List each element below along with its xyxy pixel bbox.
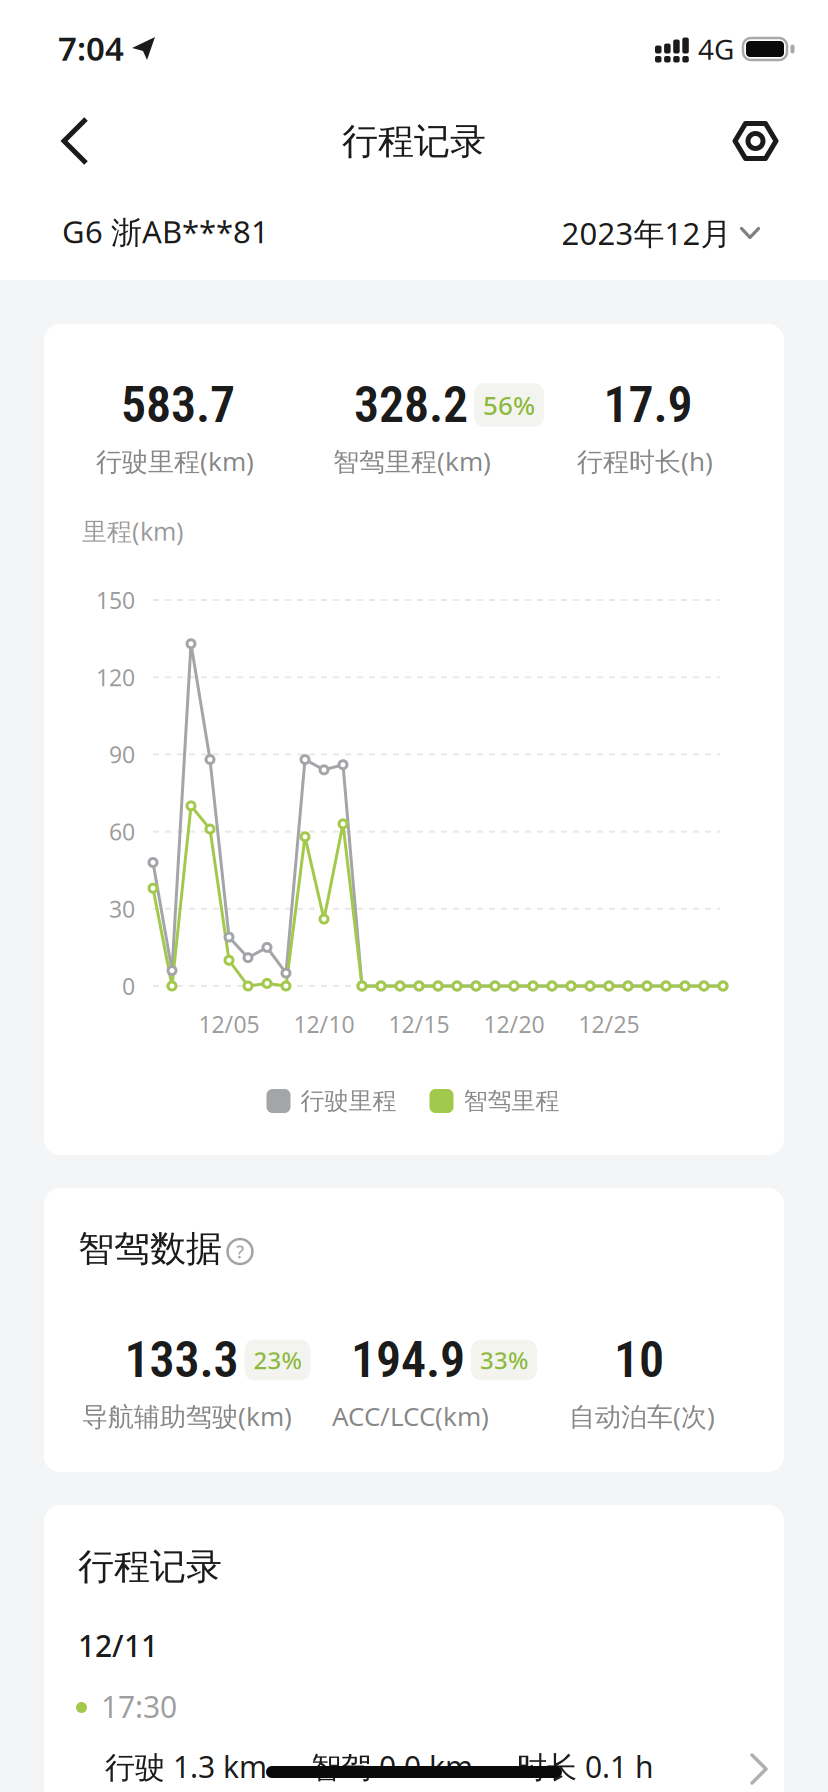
staticText: 12/05 — [198, 1008, 259, 1040]
staticText: 60 — [109, 816, 135, 847]
button[interactable]: Back — [54, 111, 98, 171]
staticText: 0 — [122, 970, 135, 1002]
staticText: 12/11 — [78, 1625, 158, 1666]
staticText: 12/15 — [388, 1008, 449, 1040]
staticText: 行驶里程 — [300, 1086, 396, 1116]
staticText: 150 — [96, 584, 135, 616]
staticText: 583.7 — [121, 376, 235, 434]
staticText: 23% — [253, 1344, 301, 1376]
staticText: 7:04 — [58, 25, 124, 70]
staticText: 行程时长(h) — [577, 443, 713, 479]
staticText: ? — [236, 1239, 244, 1264]
staticText: 行驶里程(km) — [96, 443, 254, 479]
staticText: 2023年12月 — [561, 212, 731, 254]
button[interactable]: 行驶 1.3 km — [44, 1505, 784, 1792]
staticText: 时长 0.1 h — [517, 1746, 654, 1787]
staticText: 90 — [109, 739, 135, 770]
staticText: 智驾 0.0 km — [311, 1746, 473, 1787]
staticText: 194.9 — [351, 1331, 465, 1389]
staticText: G6 浙AB***81 — [62, 210, 269, 252]
staticText: 里程(km) — [82, 514, 184, 548]
staticText: 智驾里程(km) — [333, 443, 491, 479]
staticText: 12/20 — [483, 1008, 544, 1040]
button[interactable]: 智驾数据说明 — [226, 1237, 254, 1265]
staticText: 120 — [96, 661, 135, 693]
staticText: 智驾数据 — [78, 1226, 222, 1271]
staticText: 328.2 — [354, 376, 468, 434]
staticText: 导航辅助驾驶(km) — [82, 1398, 292, 1434]
staticText: 4G — [698, 30, 734, 68]
staticText: 智驾里程 — [463, 1086, 559, 1116]
staticText: 33% — [480, 1344, 528, 1376]
staticText: ACC/LCC(km) — [332, 1398, 489, 1434]
staticText: 56% — [483, 387, 535, 423]
button[interactable]: 2023年12月 — [561, 212, 760, 254]
staticText: 12/25 — [578, 1008, 639, 1040]
button[interactable]: Settings — [732, 121, 779, 161]
staticText: 17:30 — [101, 1686, 177, 1727]
staticText: 行程记录 — [78, 1544, 222, 1589]
staticText: 10 — [614, 1331, 664, 1389]
staticText: 行程记录 — [342, 119, 486, 164]
staticText: 30 — [109, 893, 135, 924]
staticText: 行驶 1.3 km — [105, 1746, 267, 1787]
staticText: 17.9 — [603, 376, 692, 434]
staticText: 自动泊车(次) — [569, 1398, 715, 1434]
staticText: 12/10 — [293, 1008, 354, 1040]
staticText: 133.3 — [124, 1331, 238, 1389]
